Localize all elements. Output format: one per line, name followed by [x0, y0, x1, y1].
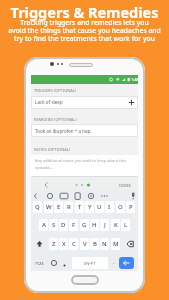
button[interactable]: Took an ibuprofen + a nap. — [31, 124, 138, 137]
button[interactable]: T — [75, 201, 84, 213]
button[interactable]: G — [80, 219, 89, 231]
staticText: REMEDIES (OPTIONAL) — [34, 117, 77, 122]
staticText: L — [124, 221, 128, 229]
staticText: U — [97, 203, 102, 211]
staticText: X — [62, 240, 66, 248]
button[interactable]: R — [64, 201, 73, 213]
staticText: W — [46, 203, 52, 211]
button[interactable]: U — [95, 201, 104, 213]
staticText: I — [108, 203, 111, 211]
button[interactable]: O — [116, 201, 125, 213]
staticText: F — [72, 221, 76, 229]
staticText: V — [83, 240, 87, 248]
button[interactable]: X — [59, 238, 68, 250]
staticText: B — [93, 240, 97, 248]
staticText: O — [118, 203, 123, 211]
button[interactable]: EN•PT — [72, 257, 108, 269]
button[interactable]: D — [59, 219, 68, 231]
staticText: Y — [88, 203, 92, 211]
button[interactable]: I — [105, 201, 114, 213]
staticText: Took an ibuprofen + a nap. — [35, 128, 92, 134]
staticText: Q — [35, 203, 40, 211]
button[interactable]: Y — [85, 201, 94, 213]
button[interactable]: E — [54, 201, 63, 213]
staticText: 1:48 — [131, 77, 139, 82]
staticText: J — [104, 221, 106, 229]
staticText: NOTES (OPTIONAL) — [34, 147, 71, 152]
button[interactable]: C — [69, 238, 78, 250]
staticText: ?123 — [35, 261, 44, 266]
staticText: C — [72, 240, 76, 248]
button[interactable]: DONE — [119, 183, 131, 189]
staticText: Z — [52, 240, 56, 248]
staticText: R — [67, 203, 71, 211]
button[interactable]: P — [126, 201, 135, 213]
button[interactable] — [33, 238, 46, 250]
button[interactable]: Any additional notes you wish to keep ab… — [31, 155, 138, 176]
button[interactable]: A — [39, 219, 48, 231]
button[interactable]: B — [90, 238, 99, 250]
button[interactable]: K — [111, 219, 120, 231]
staticText: E — [57, 203, 61, 211]
staticText: TRIGGERS (OPTIONAL) — [34, 88, 77, 93]
button[interactable]: F — [69, 219, 78, 231]
button[interactable]: W — [44, 201, 53, 213]
staticText: N — [102, 240, 107, 248]
button[interactable]: Z — [49, 238, 58, 250]
staticText: P — [129, 203, 133, 211]
button[interactable] — [119, 257, 134, 269]
button[interactable]: Lack of sleep — [31, 96, 138, 109]
button[interactable]: N — [100, 238, 109, 250]
staticText: A — [42, 221, 46, 229]
button[interactable]: L — [121, 219, 130, 231]
staticText: S — [52, 221, 56, 229]
button[interactable]: J — [100, 219, 109, 231]
staticText: EN•PT — [84, 261, 96, 266]
button[interactable] — [123, 238, 136, 250]
button[interactable]: S — [49, 219, 58, 231]
staticText: D — [61, 221, 66, 229]
button[interactable]: V — [80, 238, 89, 250]
staticText: G — [82, 221, 87, 229]
staticText: Lack of sleep — [35, 99, 63, 105]
staticText: Triggers & Remedies — [0, 2, 169, 22]
staticText: Any additional notes you wish to keep ab… — [35, 158, 127, 170]
staticText: K — [114, 221, 118, 229]
staticText: . — [113, 258, 115, 266]
staticText: Tracking triggers and remedies lets you … — [0, 18, 169, 43]
button[interactable]: ?123 — [33, 257, 46, 269]
button[interactable]: Q — [33, 201, 42, 213]
button[interactable]: H — [90, 219, 99, 231]
button[interactable]: M — [111, 238, 120, 250]
staticText: M — [113, 240, 119, 248]
staticText: H — [92, 221, 97, 229]
staticText: T — [78, 203, 82, 211]
button[interactable] — [71, 275, 99, 285]
